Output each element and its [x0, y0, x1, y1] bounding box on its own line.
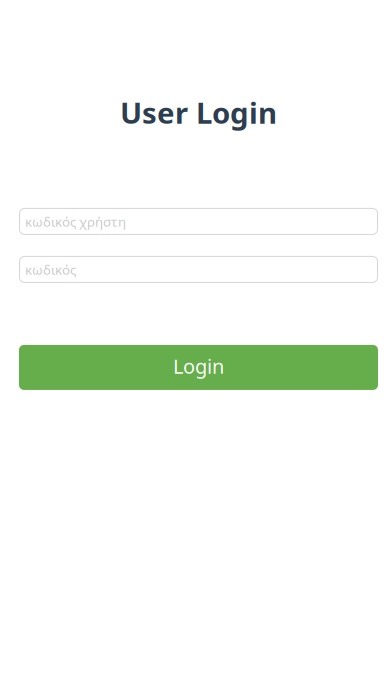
staticText: κωδικός [25, 261, 76, 278]
staticText: κωδικός χρήστη [25, 213, 126, 230]
staticText: Login [173, 353, 224, 379]
button[interactable]: Login [0, 345, 392, 390]
staticText: User Login [120, 93, 277, 132]
button[interactable]: κωδικός [0, 256, 392, 283]
button[interactable]: κωδικός χρήστη [0, 208, 392, 235]
